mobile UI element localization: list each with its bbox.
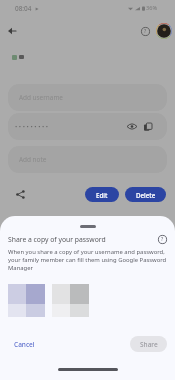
button[interactable]: Copy password (141, 120, 154, 133)
staticText: Delete (136, 191, 156, 199)
staticText: ? (144, 28, 147, 35)
button[interactable]: Show password (125, 120, 138, 133)
staticText: Add username (19, 93, 63, 102)
staticText: ••••••••• (15, 123, 50, 131)
button[interactable]: Share (130, 336, 167, 352)
button[interactable]: Back (2, 21, 22, 41)
button[interactable]: Help (137, 23, 153, 39)
button[interactable]: Share (12, 186, 28, 202)
button[interactable]: Edit (85, 187, 119, 202)
button[interactable]: ••••••••• (8, 113, 167, 140)
staticText: Share (140, 340, 158, 349)
staticText: Share a copy of your password (8, 235, 106, 244)
button[interactable]: Cancel (8, 337, 41, 352)
button[interactable]: Account (156, 23, 172, 39)
staticText: ? (161, 236, 164, 243)
button[interactable]: Help (156, 233, 169, 246)
staticText: 08:04 (15, 4, 32, 13)
staticText: When you share a copy of your username a… (8, 248, 167, 272)
button[interactable]: Delete (125, 187, 166, 202)
staticText: Edit (96, 191, 108, 199)
staticText: Add note (19, 155, 47, 164)
staticText: Cancel (14, 340, 35, 349)
staticText: 36% (146, 4, 158, 12)
